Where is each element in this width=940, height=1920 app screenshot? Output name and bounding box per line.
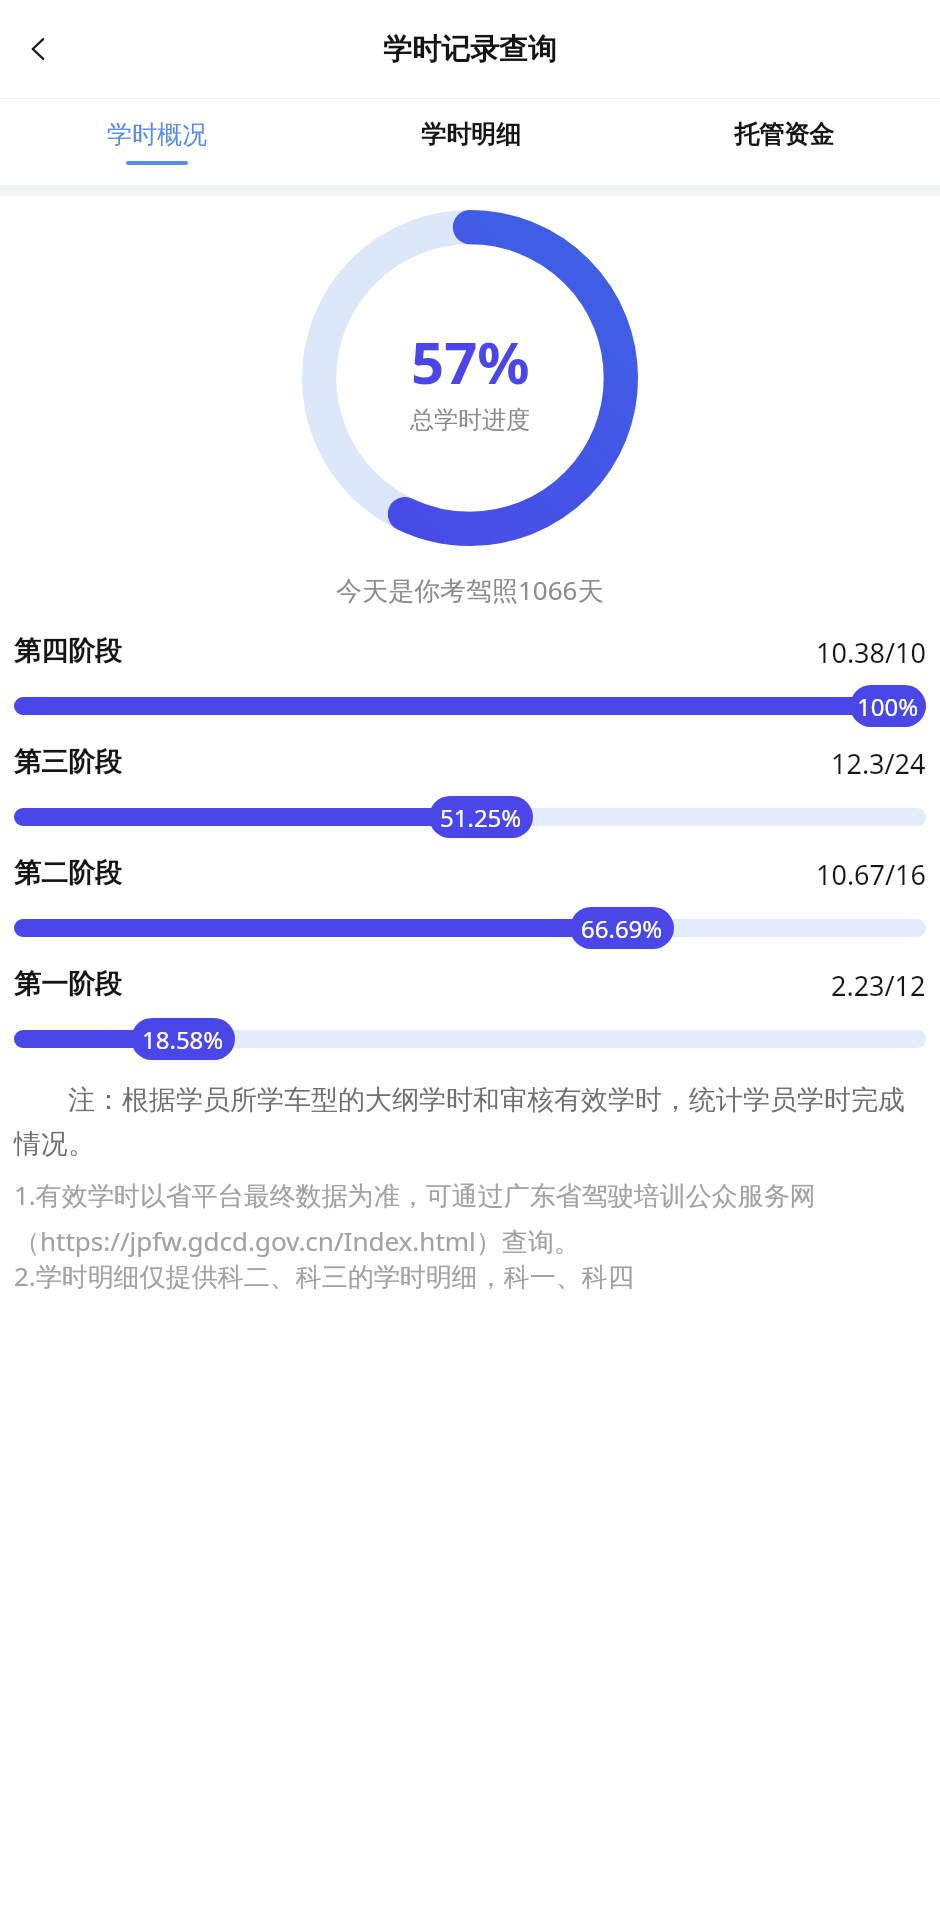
staticText: 12.3/24 — [831, 745, 926, 782]
button[interactable]: Back — [8, 19, 68, 79]
staticText: 66.69% — [581, 912, 663, 945]
staticText: 第四阶段 — [14, 634, 122, 668]
button[interactable]: 第三阶段 — [0, 729, 940, 840]
staticText: 57% — [411, 322, 530, 401]
staticText: 51.25% — [440, 801, 522, 834]
button[interactable]: 第二阶段 — [0, 840, 940, 951]
button[interactable]: 第一阶段 — [0, 951, 940, 1062]
staticText: 2.23/12 — [831, 967, 926, 1004]
staticText: 10.38/10 — [816, 634, 926, 671]
staticText: 第三阶段 — [14, 745, 122, 779]
staticText: 学时记录查询 — [383, 31, 557, 68]
staticText: 学时概况 — [107, 119, 207, 150]
button[interactable]: 托管资金 — [627, 99, 940, 185]
staticText: 总学时进度 — [410, 405, 530, 435]
staticText: 1.有效学时以省平台最终数据为准，可通过广东省驾驶培训公众服务网（https:/… — [14, 1177, 926, 1258]
button[interactable]: 第四阶段 — [0, 618, 940, 729]
button[interactable]: 学时概况 — [0, 99, 314, 185]
staticText: 2.学时明细仅提供科二、科三的学时明细，科一、科四 — [14, 1258, 634, 1294]
staticText: 100% — [857, 690, 919, 723]
staticText: 10.67/16 — [816, 856, 926, 893]
staticText: 今天是你考驾照1066天 — [336, 572, 604, 608]
button[interactable]: 学时明细 — [314, 99, 627, 185]
staticText: 第二阶段 — [14, 856, 122, 890]
staticText: 第一阶段 — [14, 967, 122, 1001]
staticText: 18.58% — [142, 1023, 224, 1056]
staticText: 学时明细 — [421, 119, 521, 150]
staticText: 托管资金 — [734, 119, 834, 150]
staticText: 注：根据学员所学车型的大纲学时和审核有效学时，统计学员学时完成情况。 — [14, 1080, 926, 1161]
